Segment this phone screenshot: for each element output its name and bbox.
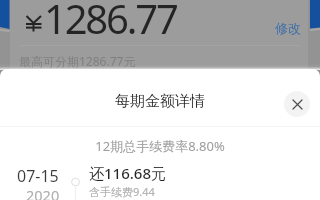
staticText: 还116.68元 xyxy=(89,163,166,183)
button[interactable]: 修改 xyxy=(269,15,307,41)
staticText: 最高可分期1286.77元 xyxy=(19,53,136,69)
staticText: 2020 xyxy=(26,185,60,200)
staticText: 1286.77 xyxy=(44,0,177,45)
staticText: 12期总手续费率8.80% xyxy=(0,137,320,155)
staticText: 修改 xyxy=(275,20,301,36)
staticText: 07-15 xyxy=(17,165,59,187)
button[interactable]: 07-15 xyxy=(0,164,320,200)
staticText: 每期金额详情 xyxy=(0,92,320,111)
button[interactable]: Close xyxy=(284,91,310,117)
staticText: 含手续费9.44 xyxy=(89,184,155,199)
